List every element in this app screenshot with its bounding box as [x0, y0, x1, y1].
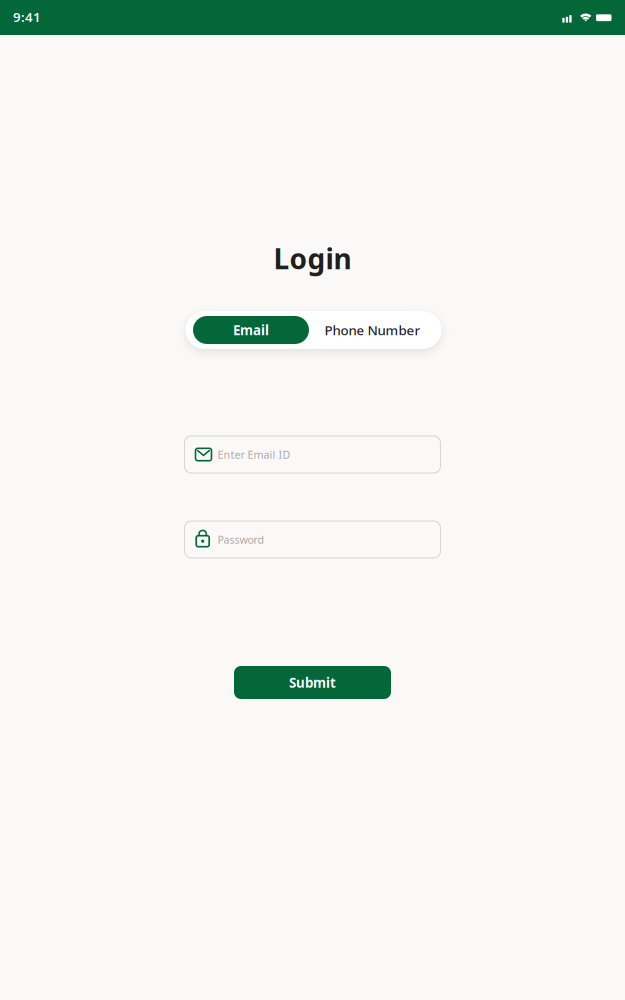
staticText: Enter Email ID: [217, 447, 290, 462]
button[interactable]: Submit: [234, 666, 391, 699]
button[interactable]: Email: [193, 316, 309, 344]
staticText: Password: [217, 532, 264, 547]
staticText: 9:41: [13, 8, 41, 26]
button[interactable]: Password: [184, 521, 440, 558]
staticText: Email: [233, 321, 269, 339]
staticText: Phone Number: [324, 321, 420, 339]
staticText: Login: [273, 240, 351, 277]
staticText: Submit: [289, 674, 336, 691]
button[interactable]: Enter Email ID: [184, 436, 440, 473]
button[interactable]: Phone Number: [309, 316, 435, 344]
